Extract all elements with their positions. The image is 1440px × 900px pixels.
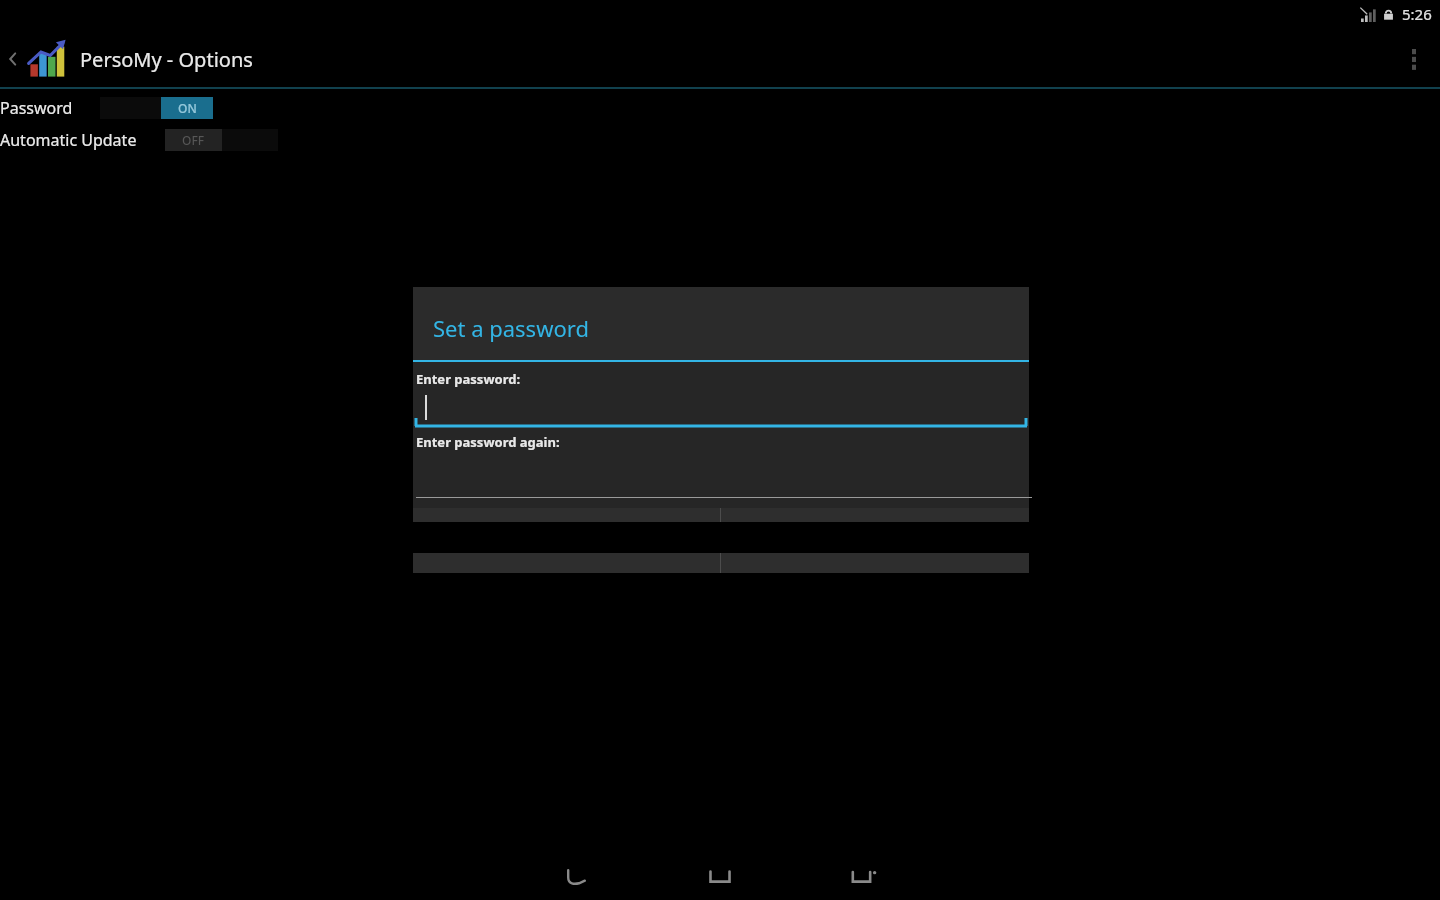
staticText: Automatic Update xyxy=(0,129,137,151)
button[interactable] xyxy=(413,393,1029,429)
button[interactable] xyxy=(413,456,1029,498)
staticText: 5:26 xyxy=(1402,4,1432,24)
staticText: OFF xyxy=(182,132,205,148)
button[interactable]: Recent apps xyxy=(792,856,936,896)
button[interactable]: Back xyxy=(504,856,648,896)
staticText: Set a password xyxy=(433,313,589,343)
staticText: Enter password: xyxy=(416,370,521,388)
button[interactable]: Navigate up xyxy=(0,33,26,85)
staticText: Password xyxy=(0,97,73,119)
staticText: ON xyxy=(178,100,197,116)
staticText: PersoMy - Options xyxy=(80,46,253,73)
button[interactable]: Automatic Update xyxy=(0,124,1440,156)
button[interactable]: More options xyxy=(1388,31,1440,87)
staticText: Enter password again: xyxy=(416,433,560,451)
button[interactable]: Password xyxy=(0,92,1440,124)
button[interactable]: Home xyxy=(648,856,792,896)
